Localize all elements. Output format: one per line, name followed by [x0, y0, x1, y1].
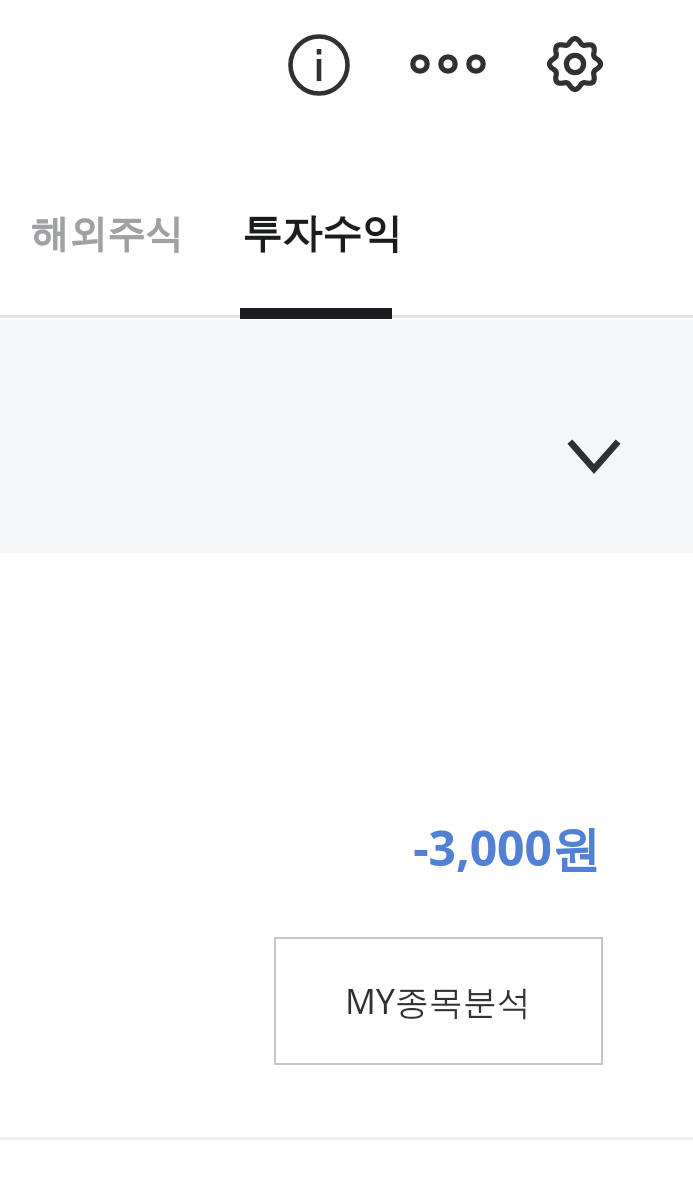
staticText: 투자수익 — [242, 208, 402, 258]
button[interactable]: 해외주식 — [0, 190, 214, 315]
staticText: 해외주식 — [31, 210, 183, 258]
button[interactable]: More options — [402, 38, 494, 90]
staticText: -3,000원 — [413, 815, 600, 881]
button[interactable]: 투자수익 — [214, 190, 418, 322]
button[interactable]: Information — [288, 34, 350, 96]
button[interactable]: Expand — [0, 320, 693, 553]
staticText: MY종목분석 — [345, 978, 532, 1024]
button[interactable]: Settings — [544, 33, 606, 95]
other: Expand — [560, 424, 628, 492]
button[interactable]: MY종목분석 — [274, 937, 603, 1065]
